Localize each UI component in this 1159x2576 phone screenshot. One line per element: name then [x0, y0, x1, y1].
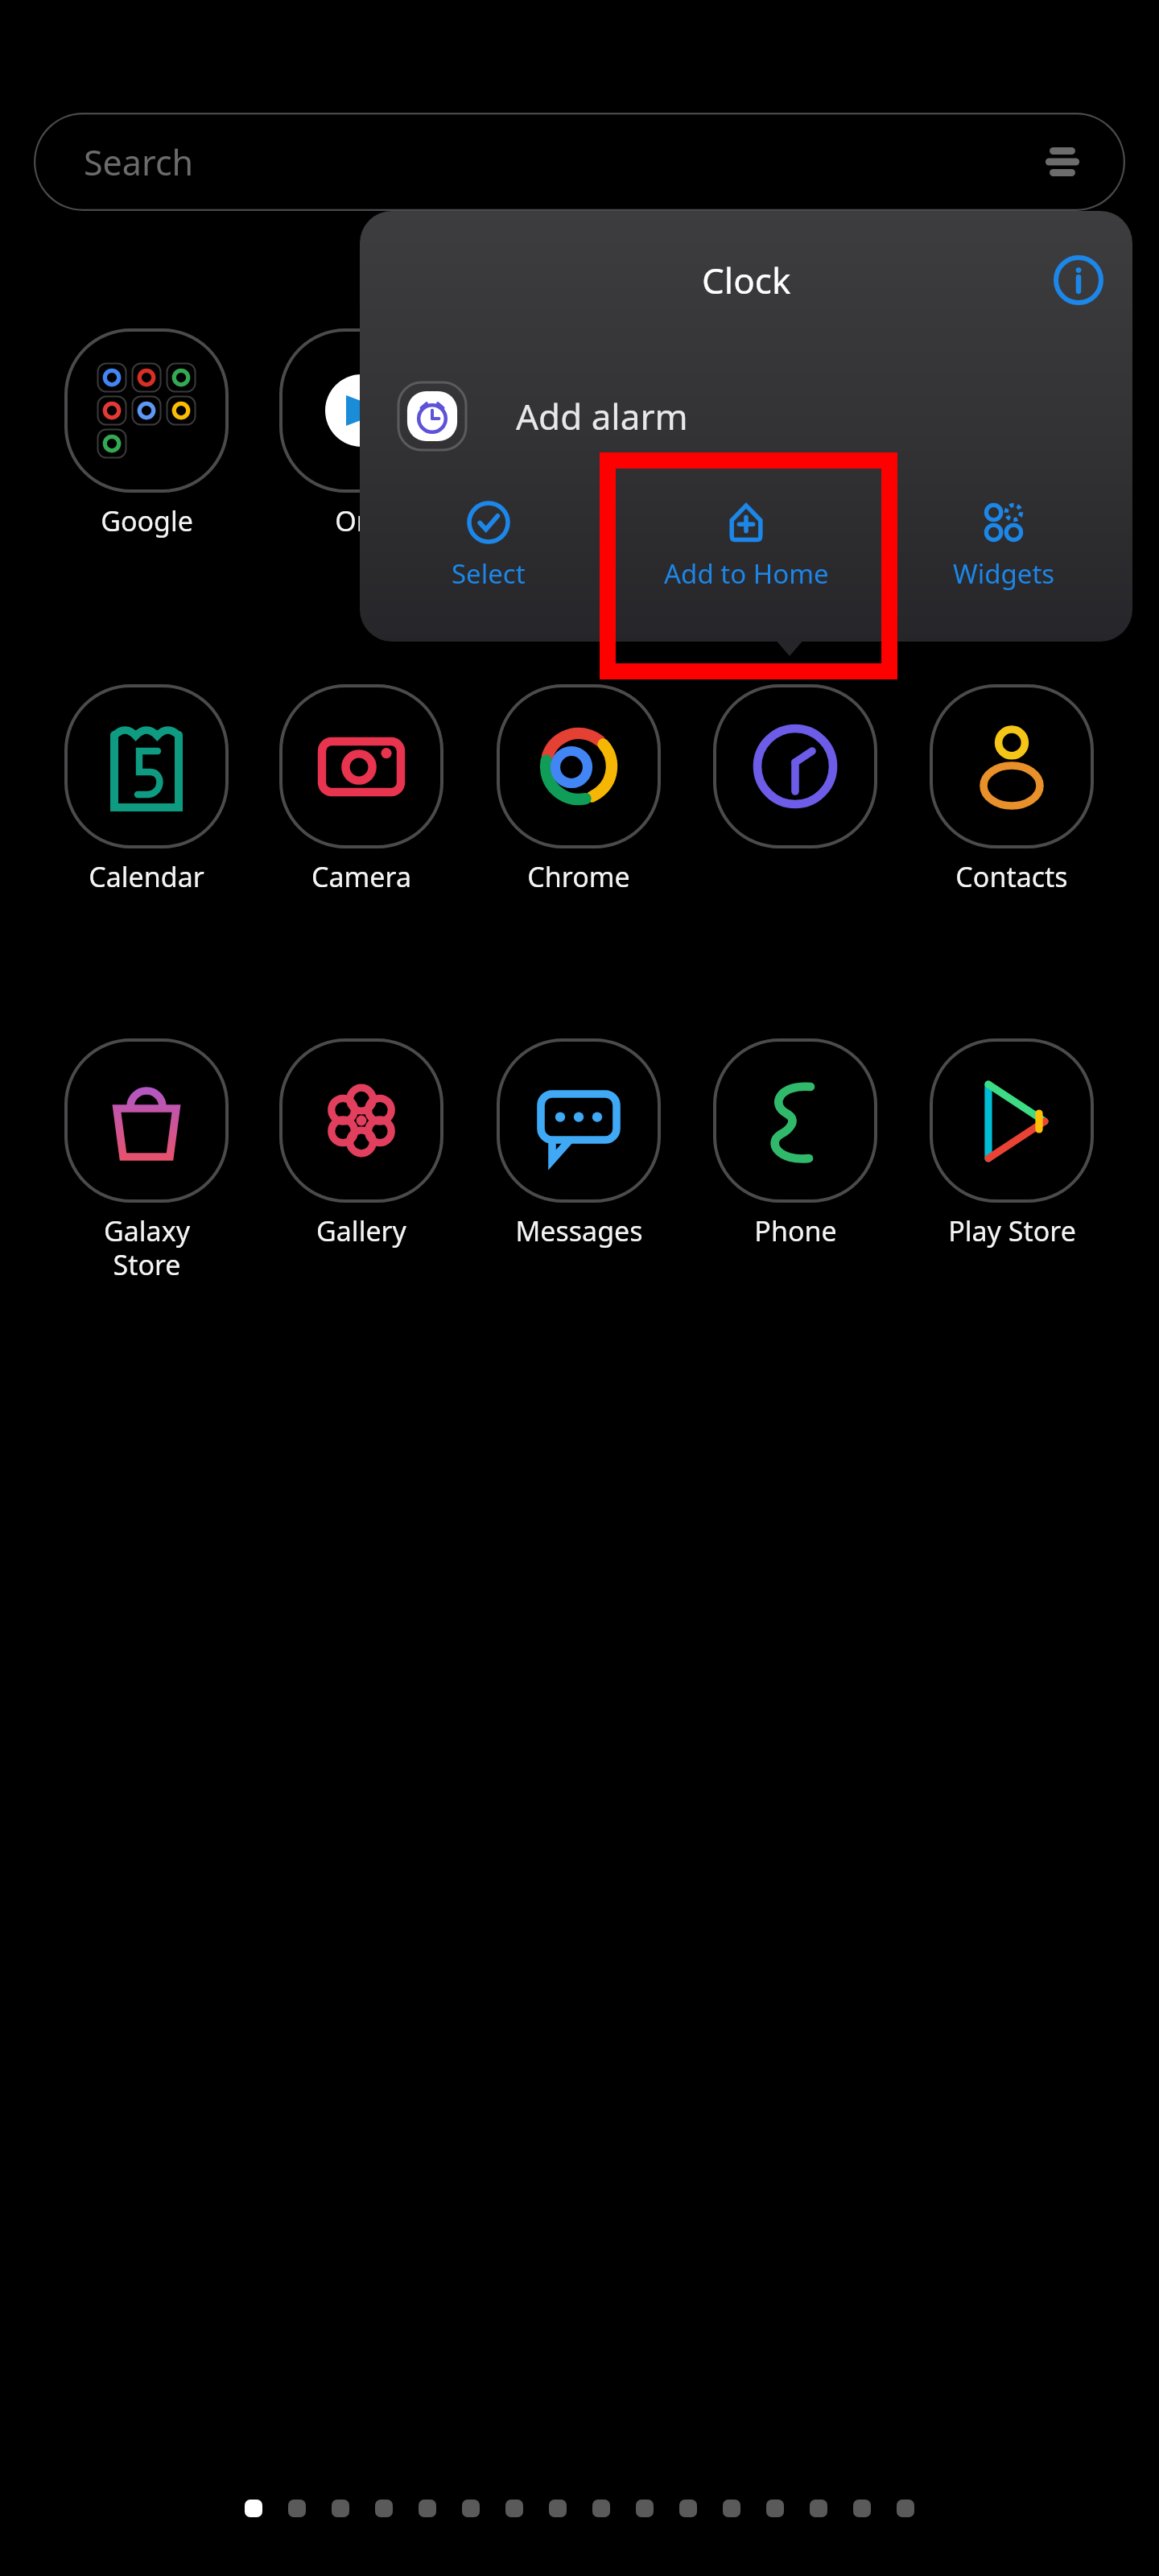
button[interactable] [723, 2500, 740, 2517]
button[interactable]: Widgets [875, 483, 1132, 642]
button[interactable] [288, 2500, 306, 2517]
staticText: Widgets [953, 555, 1055, 592]
button[interactable]: Search [34, 113, 1125, 211]
button[interactable] [549, 2500, 567, 2517]
other: Search options [1041, 141, 1083, 183]
staticText: Contacts [955, 858, 1068, 895]
staticText: Messages [515, 1212, 643, 1249]
staticText: Chrome [527, 858, 630, 895]
button[interactable]: Select [360, 483, 617, 642]
staticText: Phone [754, 1212, 837, 1249]
staticText: Camera [311, 858, 411, 895]
button[interactable]: Camera [257, 686, 466, 895]
button[interactable] [462, 2500, 480, 2517]
staticText: Add alarm [516, 392, 688, 440]
button[interactable]: App info [1054, 255, 1103, 305]
staticText: Clock [702, 256, 791, 304]
button[interactable]: Play Store [907, 1040, 1116, 1249]
staticText: One [335, 502, 389, 539]
button[interactable] [766, 2500, 784, 2517]
staticText: Galaxy Store [104, 1212, 190, 1283]
staticText: Add to Home [664, 555, 829, 592]
button[interactable]: One [257, 330, 466, 539]
button[interactable] [245, 2500, 262, 2517]
button[interactable] [853, 2500, 871, 2517]
button[interactable] [679, 2500, 697, 2517]
button[interactable] [897, 2500, 914, 2517]
button[interactable] [592, 2500, 610, 2517]
button[interactable]: Calendar [42, 686, 251, 895]
button[interactable] [636, 2500, 654, 2517]
staticText: Gallery [316, 1212, 406, 1249]
button[interactable]: Add alarm [360, 349, 1132, 483]
button[interactable] [810, 2500, 827, 2517]
button[interactable]: Clock [691, 686, 900, 858]
button[interactable]: Chrome [474, 686, 683, 895]
button[interactable]: Google [42, 330, 251, 539]
button[interactable]: Messages [474, 1040, 683, 1249]
button[interactable] [375, 2500, 393, 2517]
button[interactable]: Contacts [907, 686, 1116, 895]
button[interactable] [332, 2500, 349, 2517]
button[interactable] [419, 2500, 436, 2517]
button[interactable]: Galaxy Store [42, 1040, 251, 1283]
staticText: Play Store [948, 1212, 1076, 1249]
staticText: Calendar [89, 858, 204, 895]
button[interactable]: Phone [691, 1040, 900, 1249]
staticText: Search [84, 138, 194, 186]
button[interactable] [505, 2500, 523, 2517]
button[interactable]: Add to Home [617, 483, 875, 642]
button[interactable]: Gallery [257, 1040, 466, 1249]
staticText: Google [101, 502, 193, 539]
staticText: Select [452, 555, 526, 592]
